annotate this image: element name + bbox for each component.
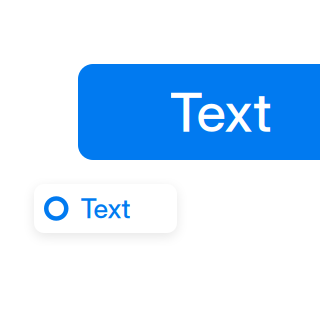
staticText: Text	[80, 192, 130, 225]
staticText: Text	[169, 79, 271, 145]
button[interactable]: Text	[78, 64, 320, 160]
button[interactable]: Text	[34, 184, 177, 233]
